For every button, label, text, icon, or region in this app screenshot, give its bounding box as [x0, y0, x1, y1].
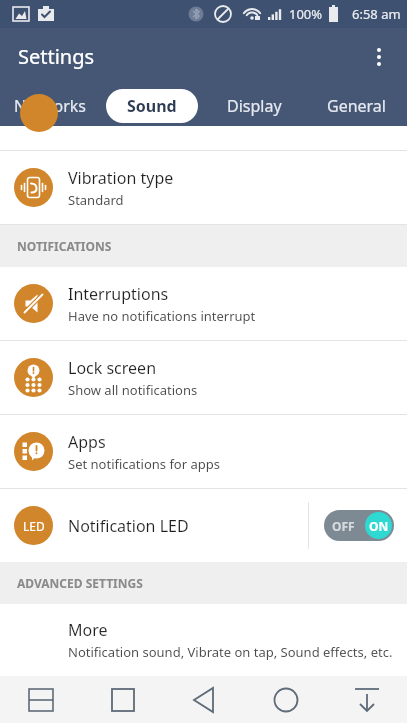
staticText: Interruptions: [68, 283, 169, 305]
button[interactable]: More: [0, 604, 407, 676]
staticText: General: [327, 95, 386, 117]
button[interactable]: Sound: [101, 85, 203, 126]
button[interactable]: Back: [164, 676, 245, 723]
staticText: Show all notifications: [68, 381, 198, 399]
staticText: More: [68, 619, 108, 641]
staticText: NOTIFICATIONS: [17, 238, 112, 254]
button[interactable]: Split screen: [0, 676, 82, 723]
button[interactable]: General: [305, 85, 407, 126]
button[interactable]: Vibration type: [0, 151, 407, 224]
button[interactable]: Home: [245, 676, 326, 723]
staticText: Sound: [127, 95, 177, 117]
button[interactable]: Networks: [0, 85, 101, 126]
staticText: Lock screen: [68, 357, 157, 379]
button[interactable]: Lock screen: [0, 341, 407, 414]
button[interactable]: Display: [203, 85, 305, 126]
staticText: Standard: [68, 191, 124, 209]
button[interactable]: More options: [359, 33, 407, 81]
button[interactable]: Interruptions: [0, 267, 407, 340]
staticText: Have no notifications interrupt: [68, 307, 256, 325]
staticText: Display: [227, 95, 282, 117]
staticText: Vibration type: [68, 167, 174, 189]
button[interactable]: Apps: [0, 415, 407, 488]
staticText: OFF: [332, 518, 355, 534]
button[interactable]: Notification LED toggle: [324, 510, 394, 541]
staticText: LED: [23, 518, 45, 534]
button[interactable]: Hide: [326, 676, 407, 723]
staticText: Networks: [14, 95, 87, 117]
staticText: 6:58 am: [352, 5, 401, 23]
staticText: Notification LED: [68, 515, 308, 537]
staticText: Apps: [68, 431, 106, 453]
staticText: Set notifications for apps: [68, 455, 220, 473]
staticText: ADVANCED SETTINGS: [17, 575, 143, 591]
button[interactable]: Recents: [82, 676, 164, 723]
button[interactable]: LED: [0, 489, 407, 562]
staticText: Notification sound, Vibrate on tap, Soun…: [68, 643, 393, 661]
staticText: Settings: [18, 43, 95, 70]
staticText: 100%: [289, 5, 323, 23]
staticText: ON: [369, 518, 389, 534]
